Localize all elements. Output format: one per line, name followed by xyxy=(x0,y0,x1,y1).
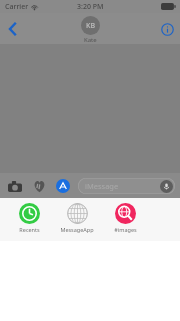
staticText: Recents xyxy=(19,226,40,233)
button[interactable]: Details xyxy=(154,16,180,42)
staticText: KB xyxy=(86,21,96,31)
button[interactable]: #images xyxy=(104,203,146,233)
button[interactable]: iMessage xyxy=(78,178,175,194)
button[interactable]: MessageApp xyxy=(56,203,98,233)
button[interactable]: KB xyxy=(81,16,100,44)
button[interactable]: Camera xyxy=(5,176,25,196)
staticText: MessageApp xyxy=(60,226,94,233)
staticText: iMessage xyxy=(85,181,119,191)
button[interactable]: Apps xyxy=(53,176,73,196)
staticText: Carrier xyxy=(5,2,29,12)
staticText: Kate xyxy=(84,36,97,44)
staticText: 3:20 PM xyxy=(77,2,104,12)
button[interactable]: Back xyxy=(0,16,26,42)
button[interactable]: Record audio xyxy=(160,180,173,193)
button[interactable]: Digital Touch xyxy=(29,176,49,196)
button[interactable]: Recents xyxy=(8,203,50,233)
staticText: #images xyxy=(114,226,137,233)
